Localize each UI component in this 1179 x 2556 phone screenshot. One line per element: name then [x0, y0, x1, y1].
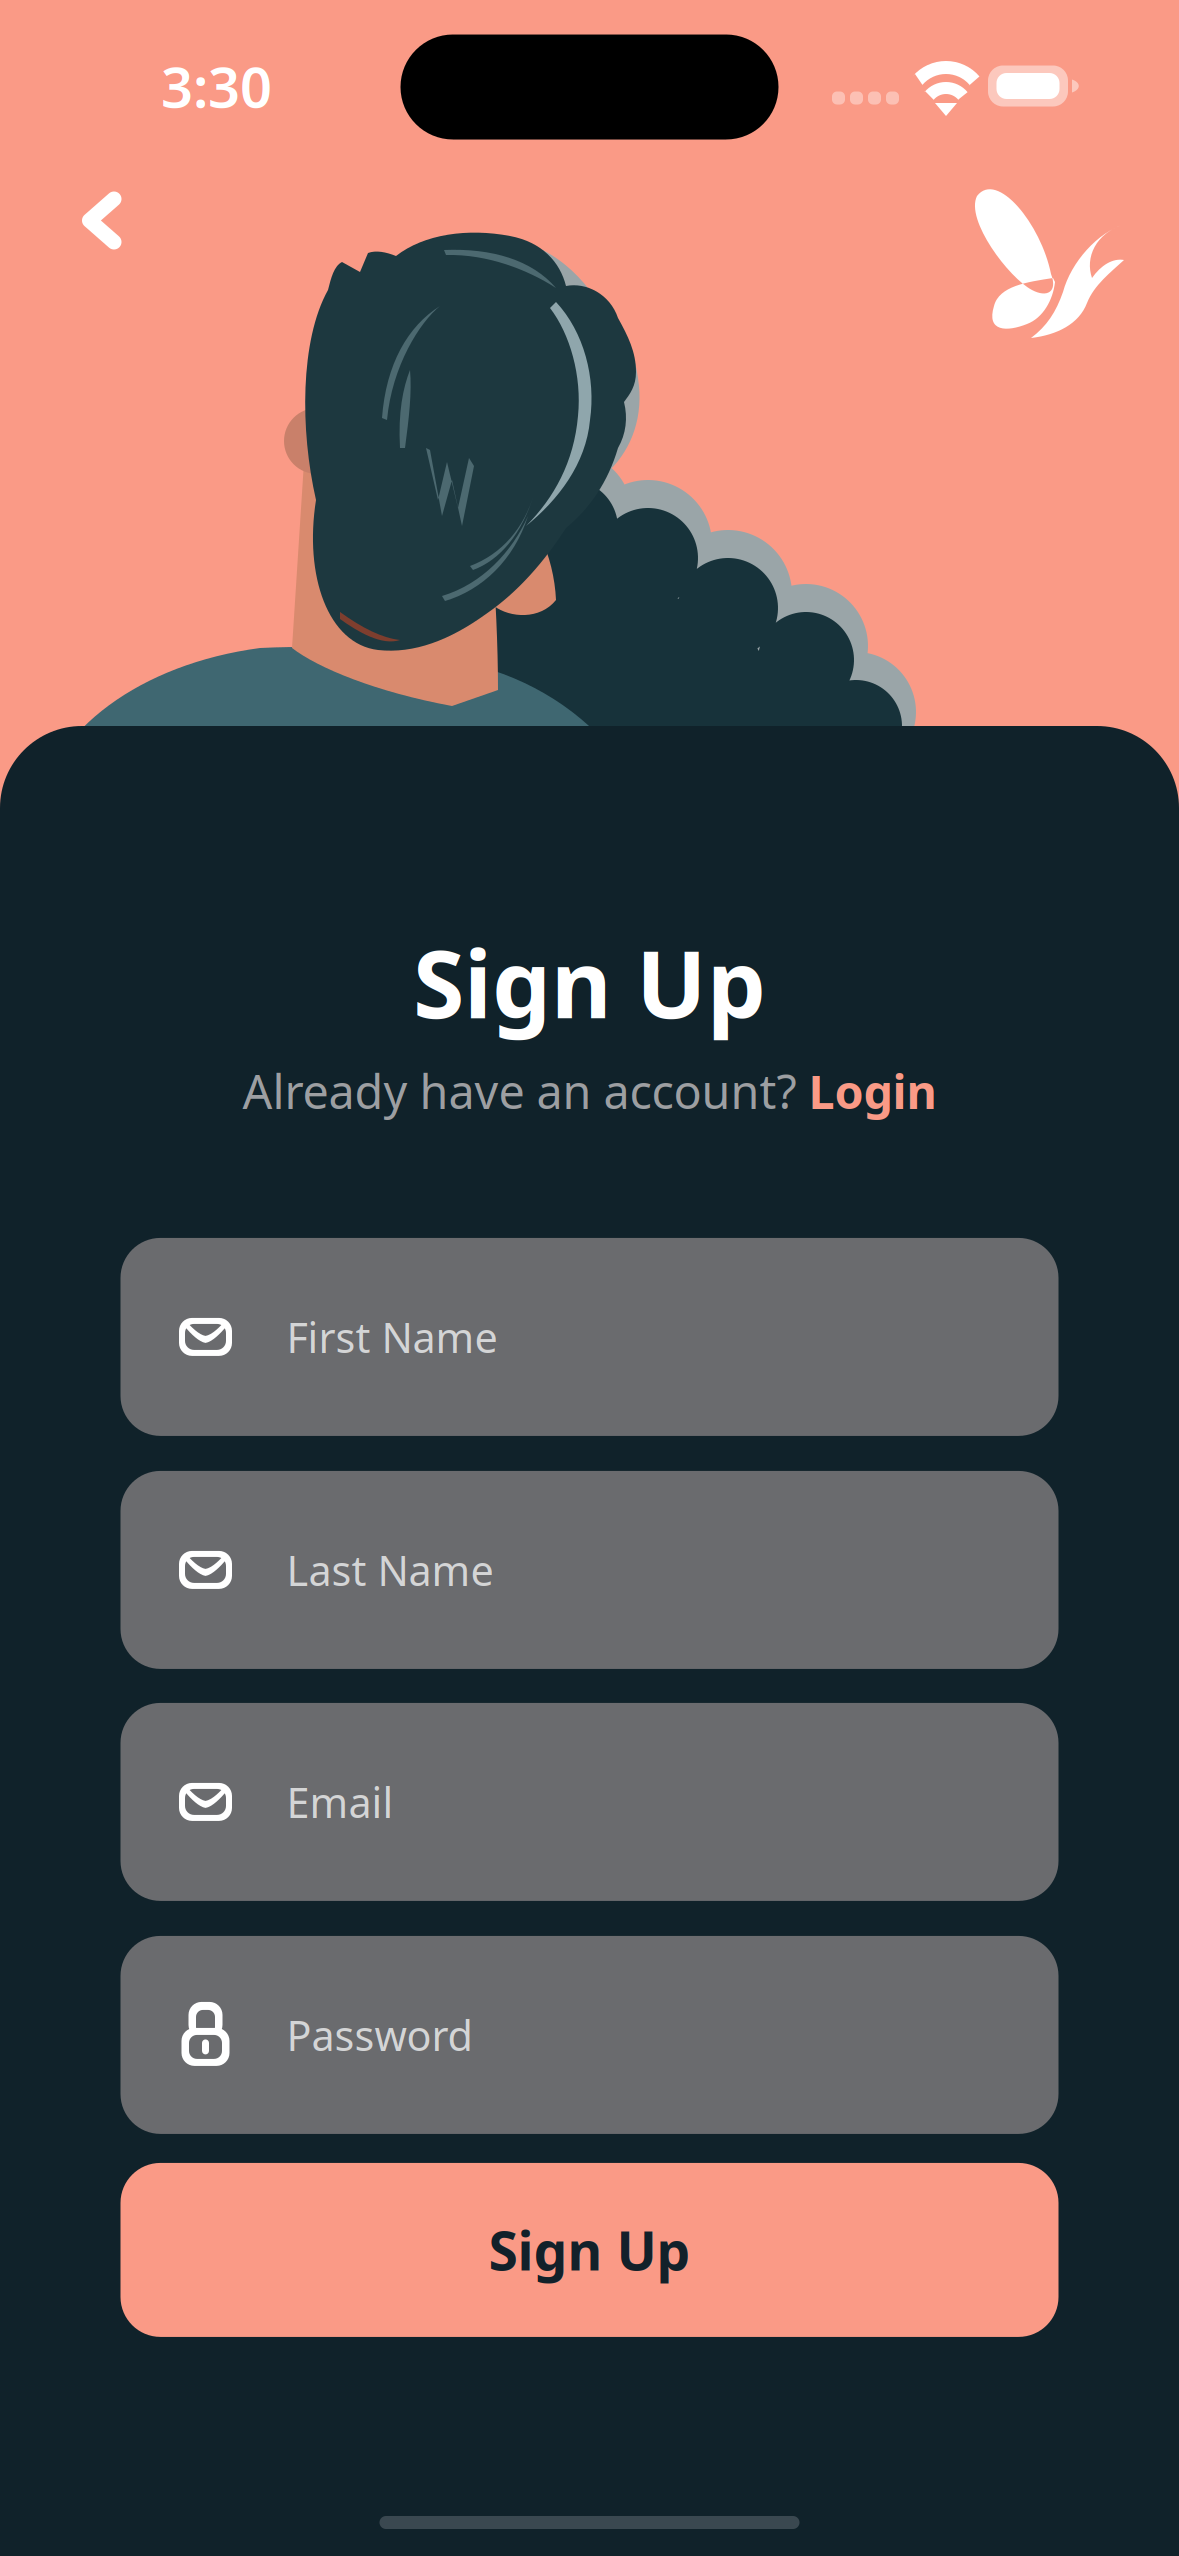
button[interactable]: First Name	[120, 1238, 1058, 1436]
button[interactable]: Back	[0, 190, 167, 296]
button[interactable]: Email	[120, 1703, 1058, 1901]
staticText: Last Name	[286, 1542, 493, 1597]
staticText: Sign Up	[488, 2214, 690, 2285]
staticText: Email	[286, 1774, 393, 1829]
button[interactable]: Last Name	[120, 1471, 1058, 1669]
staticText: Sign Up	[413, 920, 766, 1044]
staticText: 3:30	[161, 49, 272, 123]
button[interactable]: Already have an account?	[242, 1060, 936, 1122]
staticText: First Name	[286, 1309, 497, 1364]
staticText: Already have an account?	[242, 1060, 808, 1122]
staticText: Login	[808, 1060, 936, 1122]
button[interactable]: Password	[120, 1936, 1058, 2134]
staticText: Password	[286, 2007, 472, 2062]
button[interactable]: Sign Up	[120, 2163, 1058, 2337]
